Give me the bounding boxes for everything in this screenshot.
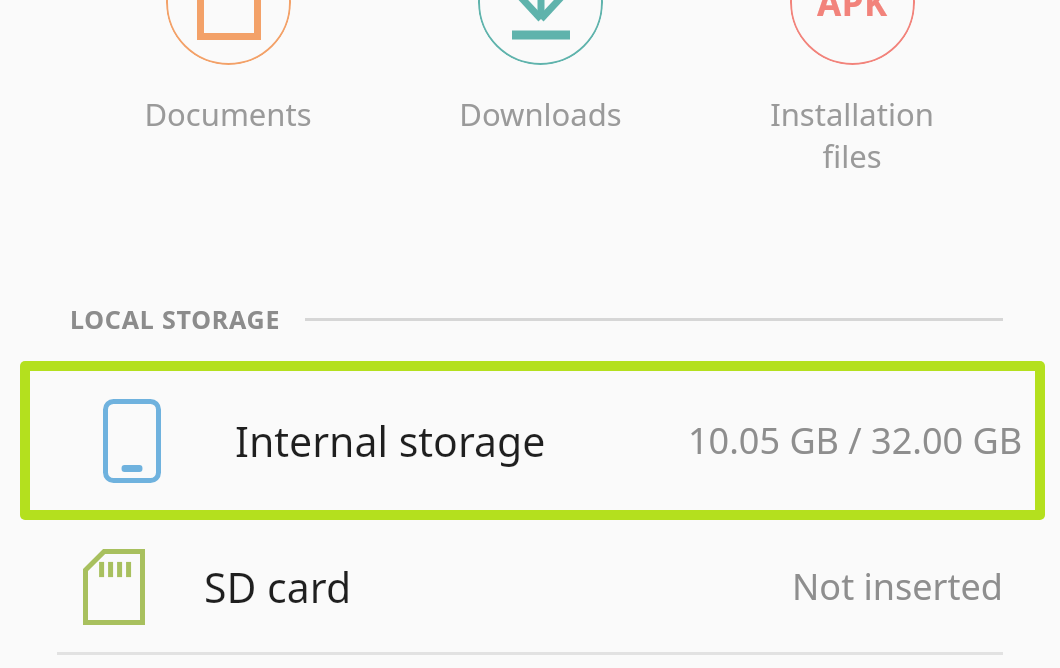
- button[interactable]: Installation files: [742, 0, 962, 177]
- other: Downloads: [507, 0, 575, 39]
- staticText: APK: [817, 0, 888, 27]
- staticText: Downloads: [459, 93, 622, 135]
- staticText: LOCAL STORAGE: [70, 302, 281, 336]
- button[interactable]: Documents: [118, 0, 338, 135]
- button[interactable]: Downloads: [430, 0, 650, 135]
- other: Installation files: [817, 0, 888, 27]
- staticText: SD card: [204, 559, 352, 615]
- staticText: Installation files: [742, 93, 962, 177]
- staticText: Not inserted: [792, 562, 1003, 611]
- other: Documents: [197, 0, 261, 40]
- staticText: Internal storage: [235, 413, 546, 469]
- button[interactable]: SD card: [0, 520, 1060, 653]
- button[interactable]: Internal storage: [20, 361, 1045, 520]
- staticText: Documents: [144, 93, 312, 135]
- staticText: 10.05 GB / 32.00 GB: [688, 416, 1023, 465]
